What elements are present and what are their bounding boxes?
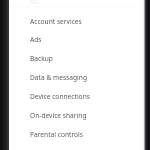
staticText: Ads	[30, 35, 42, 44]
button[interactable]: Parental controls	[9, 125, 142, 144]
button[interactable]: Account services	[9, 12, 142, 31]
staticText: Account services	[30, 17, 82, 26]
staticText: Sa	[30, 0, 37, 4]
button[interactable]: Data & messaging	[9, 68, 142, 87]
staticText: Parental controls	[30, 130, 83, 139]
staticText: Data & messaging	[30, 73, 87, 82]
staticText: Backup	[30, 54, 53, 63]
staticText: On-device sharing	[30, 111, 87, 120]
button[interactable]: On-device sharing	[9, 106, 142, 125]
button[interactable]: Device connections	[9, 87, 142, 106]
staticText: Device connections	[30, 92, 90, 101]
button[interactable]: Backup	[9, 49, 142, 68]
button[interactable]: Ads	[9, 30, 142, 49]
